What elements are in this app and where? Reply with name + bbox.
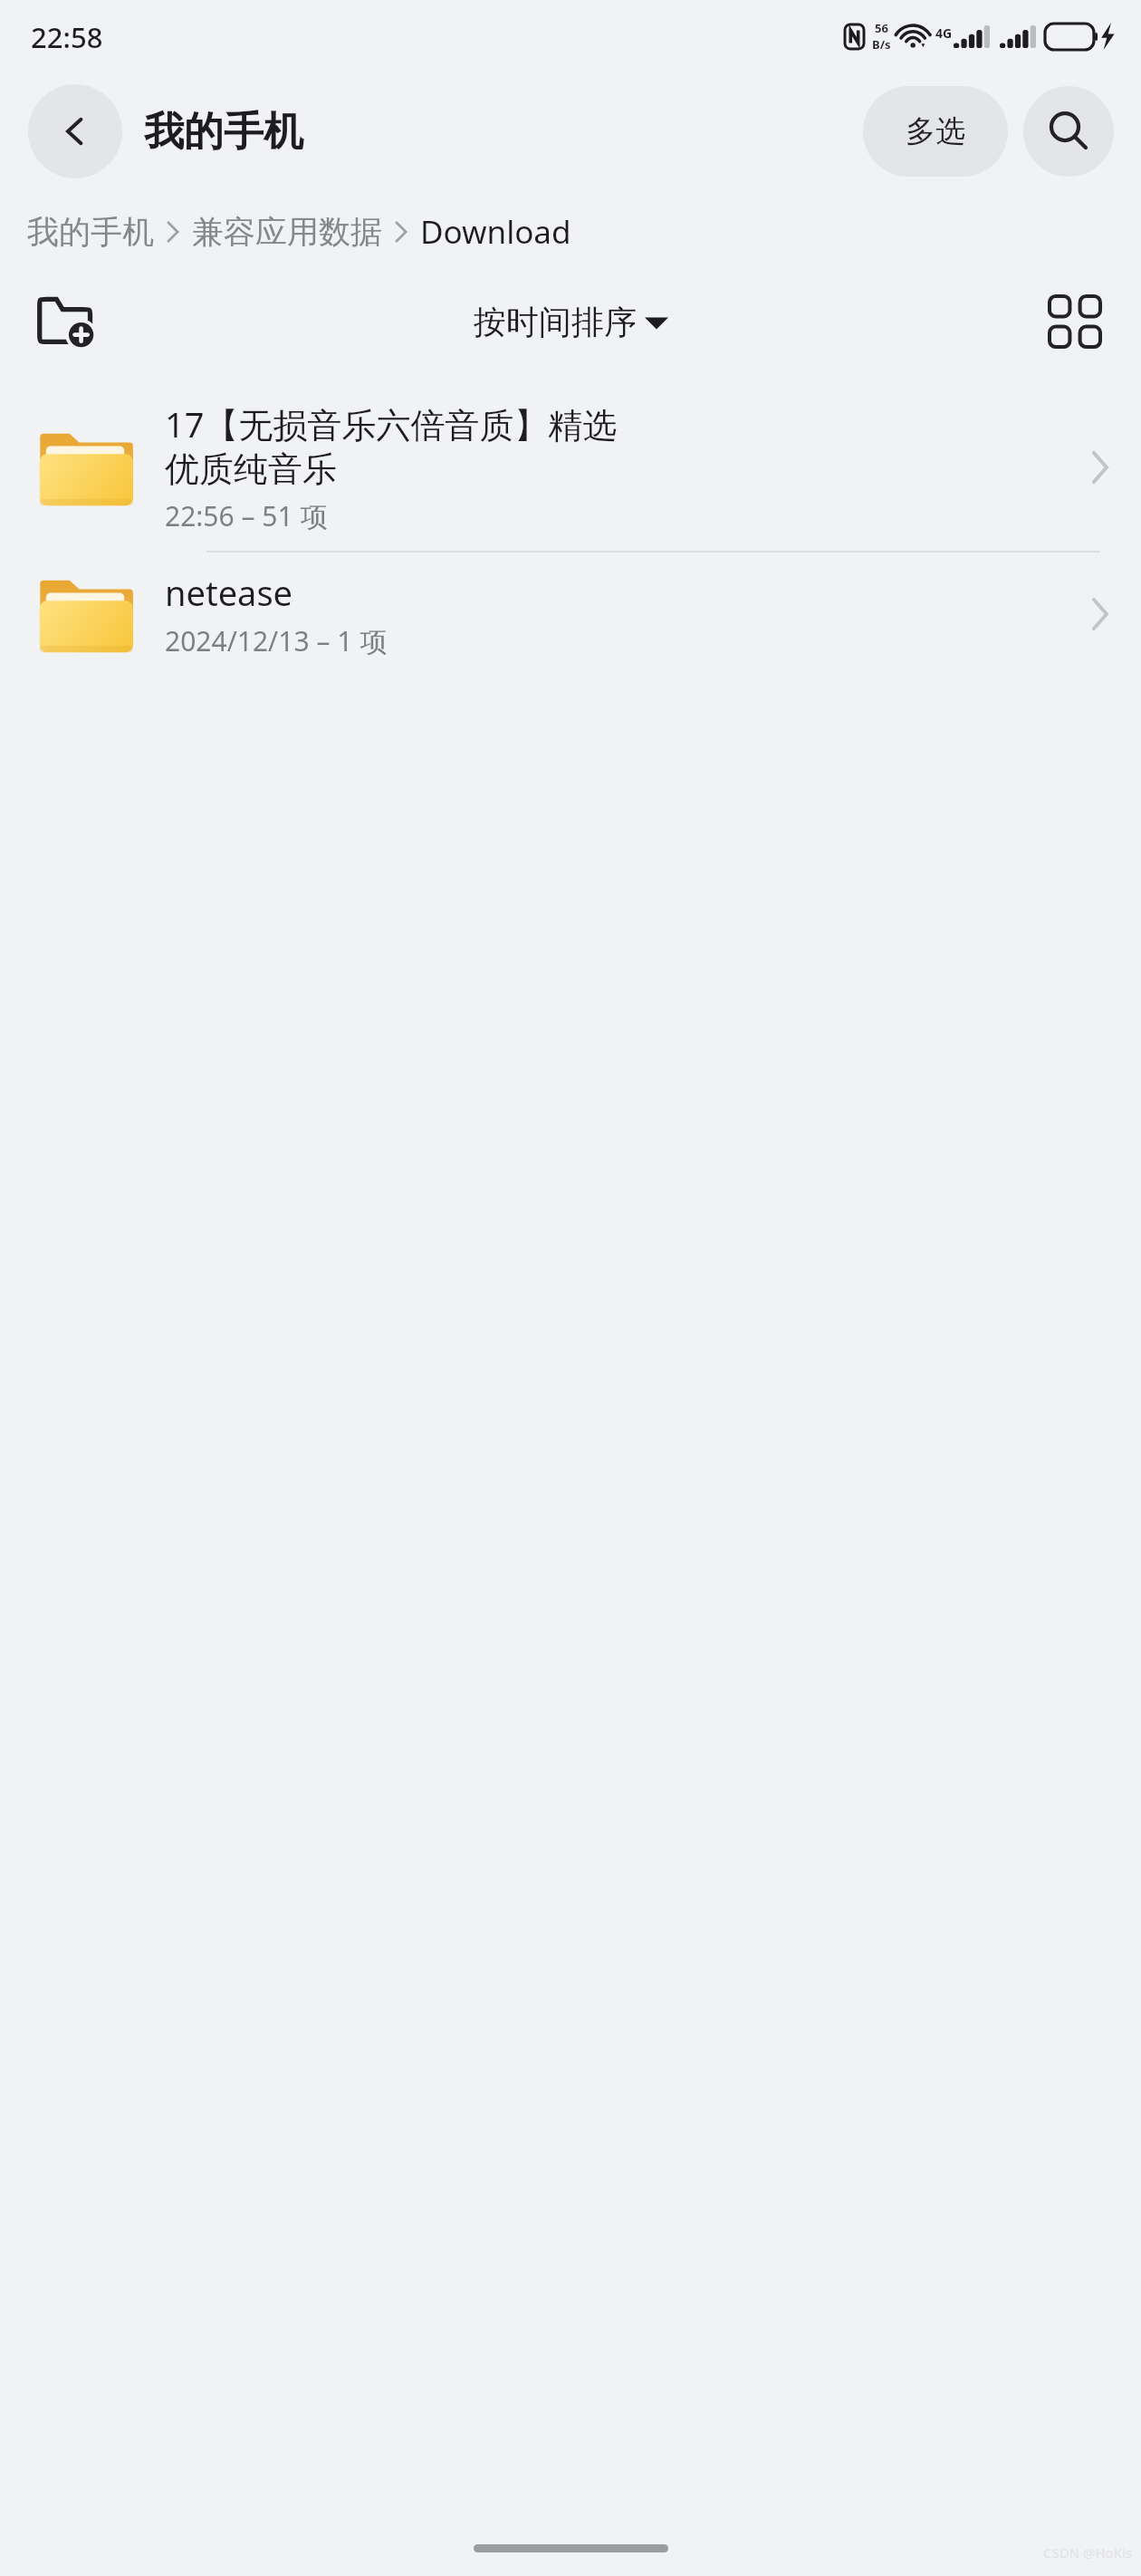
staticText: 17【无损音乐六倍音质】精选 [165,400,618,447]
staticText: 多选 [906,112,965,150]
staticText: 2024/12/13 – 1 项 [165,622,388,659]
staticText: 按时间排序 [474,302,637,342]
button[interactable]: 按时间排序 [465,294,677,350]
staticText: B/s [872,36,891,53]
button[interactable]: 网格视图 [1032,279,1117,364]
staticText: 56 [875,20,888,36]
staticText: 4G [935,24,953,42]
staticText: CSDN @HoKis [1043,2543,1132,2562]
button[interactable]: 多选 [863,86,1008,177]
staticText: 22:56 – 51 项 [165,497,328,534]
staticText: netease [165,569,293,616]
button[interactable]: 新建文件夹 [22,279,107,364]
button[interactable]: 搜索 [1023,86,1114,177]
button[interactable]: netease [0,553,1141,676]
button[interactable]: 返回 [28,84,122,178]
staticText: 我的手机 [144,107,303,157]
button[interactable]: 我的手机 [27,212,154,252]
staticText: Download [420,210,571,254]
button[interactable]: 兼容应用数据 [192,212,382,252]
staticText: 优质纯音乐 [165,447,337,491]
button[interactable]: 17【无损音乐六倍音质】精选 [0,384,1141,553]
staticText: 22:58 [31,18,103,56]
